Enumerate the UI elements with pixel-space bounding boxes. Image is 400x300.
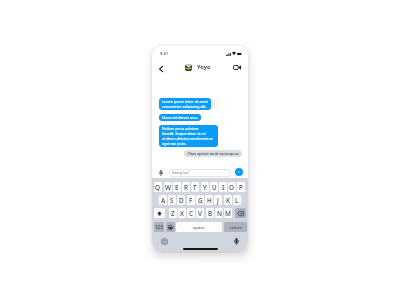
button[interactable]: E [173, 182, 181, 192]
staticText: 9:41 [160, 51, 168, 56]
button[interactable]: Back [154, 62, 167, 75]
button[interactable]: R [182, 182, 190, 192]
staticText: J [217, 196, 219, 205]
button[interactable]: Nullam porta pulvinar blandit. Suspendis… [159, 125, 218, 147]
button[interactable]: C [187, 208, 195, 218]
button[interactable]: X [178, 208, 186, 218]
staticText: A [161, 196, 166, 205]
staticText: H [207, 196, 212, 205]
button[interactable]: Emoji [166, 222, 175, 232]
button[interactable]: D [177, 195, 185, 205]
button[interactable]: space [176, 222, 222, 232]
staticText: space [193, 224, 205, 230]
button[interactable]: Lorem ipsum dolor sit amet, consectetur … [159, 98, 211, 110]
staticText: W [165, 183, 172, 192]
staticText: I [222, 183, 225, 192]
button[interactable]: Class aptent taciti sociosqu ad [184, 150, 242, 157]
button[interactable]: F [187, 195, 195, 205]
staticText: P [239, 183, 243, 192]
staticText: X [180, 209, 184, 218]
button[interactable]: B [206, 208, 214, 218]
staticText: U [212, 183, 217, 192]
button[interactable]: Q [154, 182, 162, 192]
button[interactable]: 123 [154, 222, 164, 232]
button[interactable]: Shift [154, 208, 165, 218]
staticText: Nullam porta pulvinar blandit. Suspendis… [162, 126, 213, 146]
button[interactable]: O [228, 182, 236, 192]
button[interactable]: Switch keyboard [158, 235, 170, 247]
button[interactable]: Z [169, 208, 177, 218]
staticText: Lorem ipsum dolor sit amet, consectetur … [162, 99, 208, 109]
staticText: L [235, 196, 239, 205]
button[interactable]: Y [201, 182, 209, 192]
staticText: D [179, 196, 184, 205]
staticText: Having fun? [172, 171, 190, 175]
staticText: G [198, 196, 203, 205]
button[interactable]: K [224, 195, 232, 205]
staticText: Donec id dictum arcu. [162, 115, 198, 120]
button[interactable]: Having fun? [169, 169, 231, 177]
button[interactable]: V [196, 208, 204, 218]
staticText: R [184, 183, 189, 192]
staticText: Q [155, 183, 161, 192]
staticText: C [189, 209, 194, 218]
staticText: F [189, 196, 193, 205]
button[interactable]: Video call [230, 61, 243, 74]
button[interactable]: L [233, 195, 241, 205]
button[interactable]: W [164, 182, 172, 192]
button[interactable]: S [168, 195, 176, 205]
button[interactable]: G [196, 195, 204, 205]
button[interactable]: I [219, 182, 227, 192]
staticText: V [198, 209, 202, 218]
staticText: E [175, 183, 179, 192]
button[interactable]: U [210, 182, 218, 192]
staticText: Yoyo [197, 63, 211, 71]
button[interactable]: Dictate [230, 235, 242, 247]
staticText: M [225, 209, 231, 218]
button[interactable]: Backspace [235, 208, 246, 218]
staticText: O [229, 183, 235, 192]
staticText: T [193, 183, 197, 192]
staticText: Z [171, 209, 175, 218]
staticText: Y [203, 183, 207, 192]
button[interactable]: J [214, 195, 222, 205]
staticText: K [226, 196, 231, 205]
button[interactable]: M [224, 208, 232, 218]
staticText: N [217, 209, 222, 218]
button[interactable]: P [237, 182, 245, 192]
staticText: Class aptent taciti sociosqu ad [187, 151, 239, 156]
staticText: B [208, 209, 213, 218]
staticText: return [230, 225, 242, 230]
button[interactable]: Send [235, 168, 243, 176]
button[interactable]: return [224, 222, 247, 232]
button[interactable]: Voice message [156, 168, 165, 177]
button[interactable]: A [159, 195, 167, 205]
button[interactable]: Donec id dictum arcu. [159, 114, 201, 121]
button[interactable]: T [191, 182, 199, 192]
staticText: 123 [155, 224, 163, 230]
button[interactable]: N [215, 208, 223, 218]
staticText: S [170, 196, 174, 205]
button[interactable]: H [205, 195, 213, 205]
